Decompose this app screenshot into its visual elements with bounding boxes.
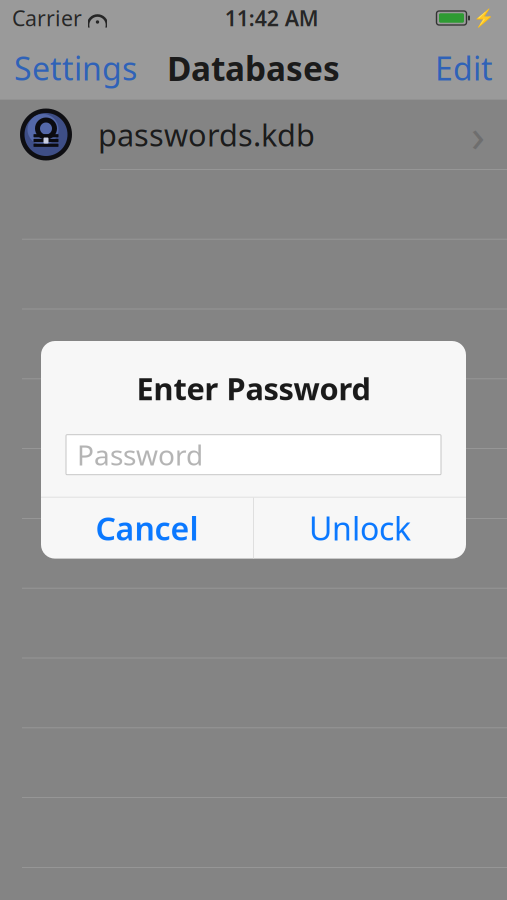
button[interactable]: Settings: [0, 36, 151, 100]
staticText: 11:42 AM: [225, 4, 319, 32]
staticText: Cancel: [95, 507, 198, 549]
staticText: Settings: [14, 47, 137, 89]
staticText: passwords.kdb: [98, 114, 315, 155]
button[interactable]: passwords.kdb: [0, 100, 507, 170]
staticText: ›: [471, 104, 485, 165]
staticText: Databases: [167, 46, 340, 90]
staticText: Edit: [435, 47, 493, 89]
staticText: ⚡: [473, 8, 495, 28]
button[interactable]: Cancel: [41, 498, 253, 559]
button[interactable]: Unlock: [254, 498, 466, 559]
staticText: Unlock: [309, 507, 411, 549]
button[interactable]: Edit: [421, 36, 507, 100]
staticText: Password: [77, 436, 203, 473]
staticText: Enter Password: [136, 368, 370, 409]
staticText: Carrier: [12, 4, 82, 32]
